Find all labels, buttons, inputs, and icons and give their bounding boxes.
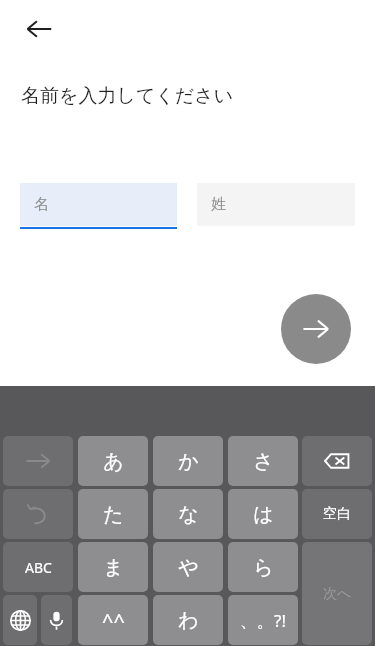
button[interactable]: ま (78, 542, 148, 592)
button[interactable]: な (153, 489, 223, 539)
button[interactable]: Voice input (41, 595, 72, 645)
staticText: 空白 (323, 505, 351, 523)
button[interactable]: か (153, 436, 223, 486)
button[interactable]: さ (228, 436, 298, 486)
button[interactable]: Backspace (302, 436, 372, 486)
button[interactable]: わ (153, 595, 223, 645)
button[interactable]: あ (78, 436, 148, 486)
button[interactable]: や (153, 542, 223, 592)
staticText: 名前を入力してください (21, 84, 234, 108)
button[interactable]: ^^ (78, 595, 148, 645)
staticText: 姓 (211, 195, 226, 214)
button[interactable]: 次へ (302, 542, 372, 645)
button[interactable] (3, 436, 73, 486)
button[interactable]: ABC (3, 542, 73, 592)
staticText: 次へ (323, 585, 352, 603)
button[interactable]: 姓 (197, 183, 355, 229)
button[interactable]: は (228, 489, 298, 539)
button[interactable]: 空白 (302, 489, 372, 539)
button[interactable]: Switch keyboard (3, 595, 37, 645)
staticText: ABC (25, 558, 52, 577)
staticText: ^^ (102, 607, 125, 634)
button[interactable]: Back (20, 10, 58, 48)
staticText: 、。?! (240, 609, 286, 632)
staticText: な (178, 502, 199, 527)
button[interactable]: ら (228, 542, 298, 592)
staticText: 名 (34, 195, 49, 214)
button[interactable]: 名 (20, 183, 177, 229)
button[interactable]: Undo (3, 489, 73, 539)
staticText: わ (178, 608, 199, 633)
staticText: か (178, 449, 199, 474)
button[interactable]: た (78, 489, 148, 539)
staticText: は (253, 502, 274, 527)
button[interactable]: Next (281, 294, 351, 364)
button[interactable]: 、。?! (228, 595, 298, 645)
staticText: た (103, 502, 124, 527)
staticText: ら (253, 555, 274, 580)
staticText: あ (103, 449, 124, 474)
staticText: さ (253, 449, 274, 474)
staticText: や (178, 555, 199, 580)
staticText: ま (103, 555, 124, 580)
